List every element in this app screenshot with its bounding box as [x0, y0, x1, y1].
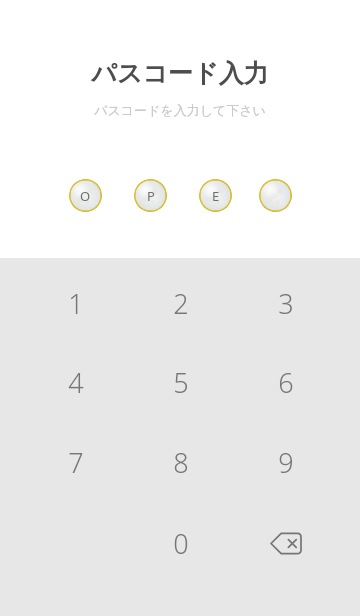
button[interactable]: 8	[128, 423, 233, 502]
staticText: パスコードを入力して下さい	[94, 102, 266, 118]
staticText: 7	[68, 444, 84, 481]
staticText: 1	[68, 285, 84, 322]
staticText: 6	[278, 364, 294, 401]
staticText: 8	[173, 444, 189, 481]
staticText: パスコード入力	[91, 58, 269, 89]
button[interactable]: 9	[233, 423, 338, 502]
button[interactable]: 0	[128, 504, 233, 583]
staticText: 3	[278, 285, 294, 322]
button[interactable]: 4	[23, 343, 128, 422]
staticText: 0	[173, 525, 189, 562]
button[interactable]: 2	[128, 264, 233, 343]
staticText: E	[212, 187, 220, 205]
button[interactable]: Delete	[233, 504, 338, 583]
button[interactable]: 7	[23, 423, 128, 502]
staticText: 4	[68, 364, 84, 401]
staticText: O	[80, 187, 91, 205]
staticText: 9	[278, 444, 294, 481]
staticText: 5	[173, 364, 189, 401]
button[interactable]: 3	[233, 264, 338, 343]
staticText: P	[147, 187, 155, 205]
staticText: 2	[173, 285, 189, 322]
button[interactable]: 1	[23, 264, 128, 343]
button[interactable]: 6	[233, 343, 338, 422]
button[interactable]: 5	[128, 343, 233, 422]
